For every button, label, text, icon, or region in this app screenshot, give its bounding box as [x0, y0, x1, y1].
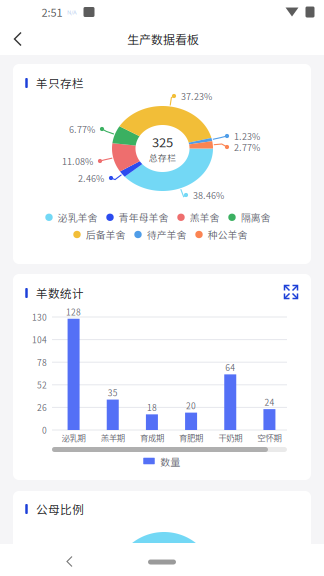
staticText: 羔羊期 [101, 431, 125, 444]
staticText: 64 [225, 361, 235, 373]
staticText: 泌乳期 [62, 431, 86, 444]
staticText: 78 [37, 356, 47, 368]
staticText: 128 [66, 306, 81, 318]
staticText: 6.77% [69, 122, 95, 135]
staticText: 2.46% [78, 171, 104, 184]
staticText: 38.46% [193, 188, 224, 201]
staticText: 20 [186, 399, 196, 412]
staticText: 24 [264, 396, 274, 408]
staticText: 羊数统计 [36, 284, 84, 301]
staticText: 后备羊舍 [86, 227, 126, 242]
staticText: 泌乳羊舍 [58, 210, 98, 224]
staticText: 104 [32, 333, 47, 346]
staticText: 37.23% [181, 89, 212, 102]
button[interactable]: Back [55, 549, 85, 575]
staticText: 0 [42, 424, 47, 436]
staticText: 羊只存栏 [36, 74, 84, 91]
staticText: 18 [147, 401, 157, 413]
staticText: 公母比例 [36, 500, 84, 517]
staticText: 育成期 [140, 431, 164, 444]
staticText: 1.23% [234, 129, 260, 142]
staticText: 空怀期 [257, 431, 281, 444]
staticText: 35 [108, 386, 118, 399]
staticText: N/A [67, 8, 77, 16]
staticText: 青年母羊舍 [119, 210, 169, 224]
staticText: 隔离舍 [241, 210, 271, 224]
staticText: 130 [32, 311, 47, 323]
staticText: 育肥期 [179, 431, 203, 444]
staticText: 11.08% [62, 154, 93, 167]
staticText: 种公羊舍 [208, 227, 248, 242]
staticText: 52 [37, 379, 47, 391]
button[interactable]: Back [0, 20, 37, 58]
staticText: 干奶期 [218, 431, 242, 444]
staticText: 26 [37, 401, 47, 413]
staticText: 2.77% [234, 140, 260, 153]
staticText: 待产羊舍 [147, 227, 187, 242]
staticText: 2:51 [41, 4, 62, 20]
staticText: 总存栏 [149, 151, 176, 164]
button[interactable]: Fullscreen [279, 280, 303, 304]
staticText: 生产数据看板 [127, 30, 199, 48]
staticText: 325 [152, 132, 173, 151]
staticText: 数量 [160, 454, 180, 469]
staticText: 羔羊舍 [190, 210, 220, 224]
